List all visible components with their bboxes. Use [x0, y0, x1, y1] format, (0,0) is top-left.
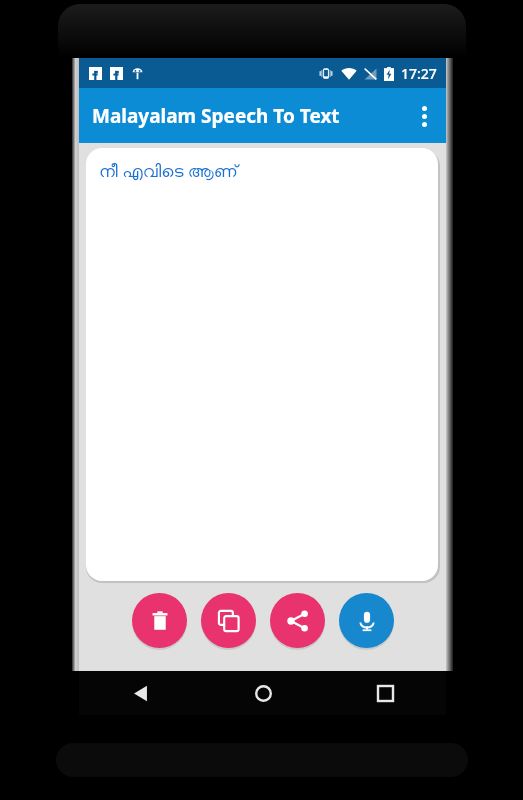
staticText: 17:27 — [401, 64, 437, 83]
button[interactable]: Home — [202, 671, 324, 715]
button[interactable]: Delete — [132, 593, 187, 648]
staticText: Malayalam Speech To Text — [92, 103, 340, 129]
button[interactable]: More options — [402, 94, 446, 138]
button[interactable]: നീ എവിടെ ആണ് — [86, 148, 438, 581]
button[interactable]: Speak — [339, 593, 394, 648]
button[interactable]: Recents — [324, 671, 446, 715]
button[interactable]: Share — [270, 593, 325, 648]
staticText: നീ എവിടെ ആണ് — [99, 159, 238, 182]
button[interactable]: Back — [79, 671, 202, 715]
button[interactable]: Copy — [201, 593, 256, 648]
